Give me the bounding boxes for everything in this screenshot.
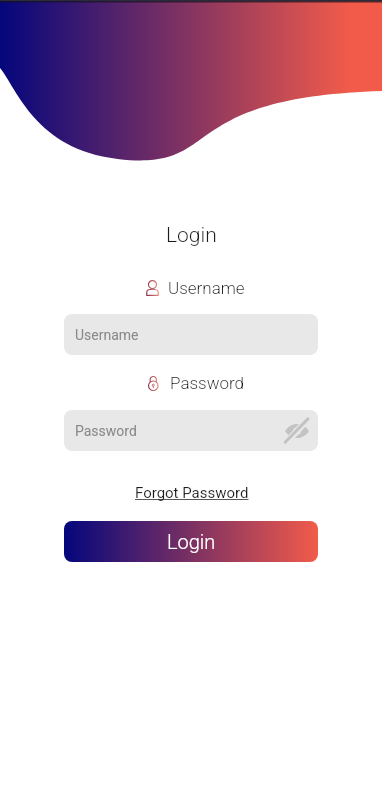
button[interactable]: Login xyxy=(64,521,318,562)
button[interactable]: Show password xyxy=(284,418,310,444)
button[interactable]: Password xyxy=(64,410,318,451)
staticText: Password xyxy=(170,373,245,393)
staticText: Username xyxy=(75,327,139,343)
staticText: Username xyxy=(168,278,245,298)
staticText: Forgot Password xyxy=(135,484,249,502)
staticText: Password xyxy=(75,423,137,439)
staticText: Login xyxy=(167,530,216,553)
button[interactable]: Username xyxy=(64,314,318,355)
staticText: Login xyxy=(166,223,217,248)
button[interactable]: Forgot Password xyxy=(131,483,253,503)
